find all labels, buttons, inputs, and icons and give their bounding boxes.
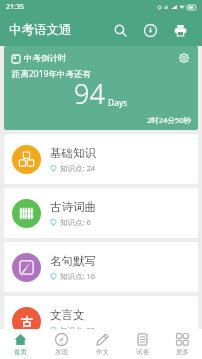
staticText: 试卷 — [136, 348, 149, 356]
button[interactable]: Settings — [176, 50, 192, 66]
button[interactable]: 基础知识 — [4, 134, 198, 184]
button[interactable]: 试卷 — [122, 329, 162, 359]
staticText: 中考语文通 — [9, 22, 72, 38]
button[interactable]: 古诗词曲 — [4, 188, 198, 238]
staticText: 知识点: 24 — [60, 163, 96, 173]
staticText: 知识点: 6 — [60, 217, 91, 227]
staticText: 首页 — [14, 348, 27, 356]
staticText: 21:35 — [6, 2, 24, 12]
staticText: 文言文 — [50, 308, 85, 322]
button[interactable]: 更多 — [162, 329, 202, 359]
staticText: 基础知识 — [50, 146, 96, 160]
staticText: 知识点: 35 — [60, 325, 96, 335]
button[interactable]: Search — [107, 17, 133, 43]
button[interactable]: Downloads — [137, 17, 163, 43]
staticText: 中考倒计时 — [24, 53, 67, 64]
staticText: 更多 — [176, 348, 189, 356]
staticText: 发现 — [55, 348, 68, 356]
staticText: 2时24分50秒 — [147, 115, 191, 125]
staticText: 知识点: 16 — [60, 271, 96, 281]
staticText: Days — [108, 97, 128, 109]
button[interactable]: Print — [167, 17, 193, 43]
staticText: 94 — [74, 75, 105, 112]
button[interactable]: 古 — [4, 296, 198, 346]
button[interactable]: 作文 — [82, 329, 122, 359]
staticText: 古 — [21, 314, 33, 329]
button[interactable]: 中考倒计时 — [4, 46, 198, 130]
staticText: 距离2019年中考还有 — [12, 68, 91, 80]
button[interactable]: 名句默写 — [4, 242, 198, 292]
button[interactable]: 首页 — [0, 329, 41, 359]
staticText: 名句默写 — [50, 254, 96, 268]
button[interactable]: 发现 — [41, 329, 82, 359]
staticText: 古诗词曲 — [50, 200, 96, 214]
staticText: 作文 — [96, 348, 109, 356]
